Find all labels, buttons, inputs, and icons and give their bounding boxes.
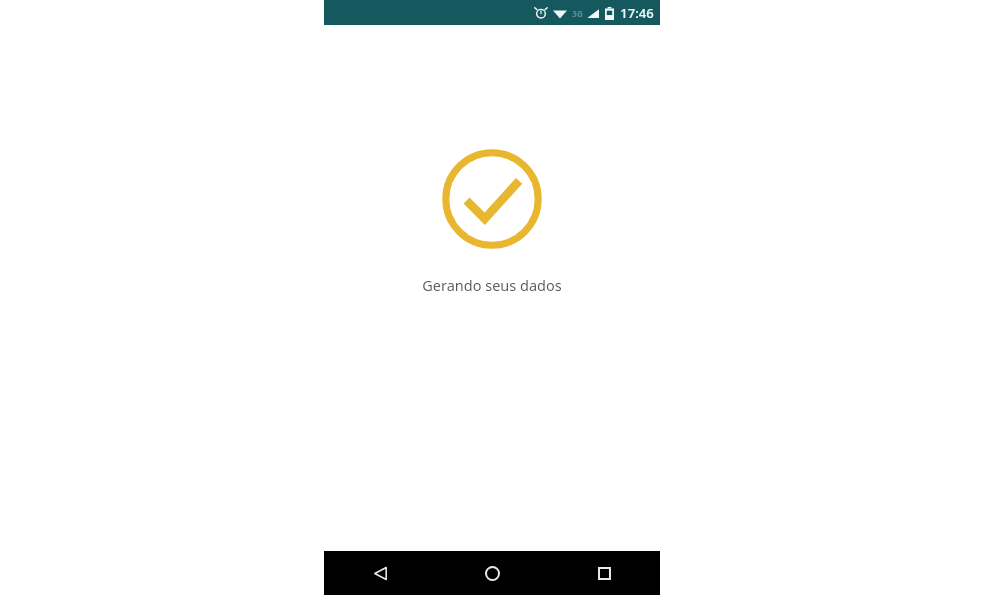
staticText: Gerando seus dados [422,275,562,295]
button[interactable]: Concluído [440,147,544,251]
staticText: 3G [572,8,583,19]
staticText: 17:46 [620,4,654,22]
button[interactable]: Recent apps [548,551,660,595]
button[interactable]: Back [324,551,436,595]
button[interactable]: Home [436,551,548,595]
